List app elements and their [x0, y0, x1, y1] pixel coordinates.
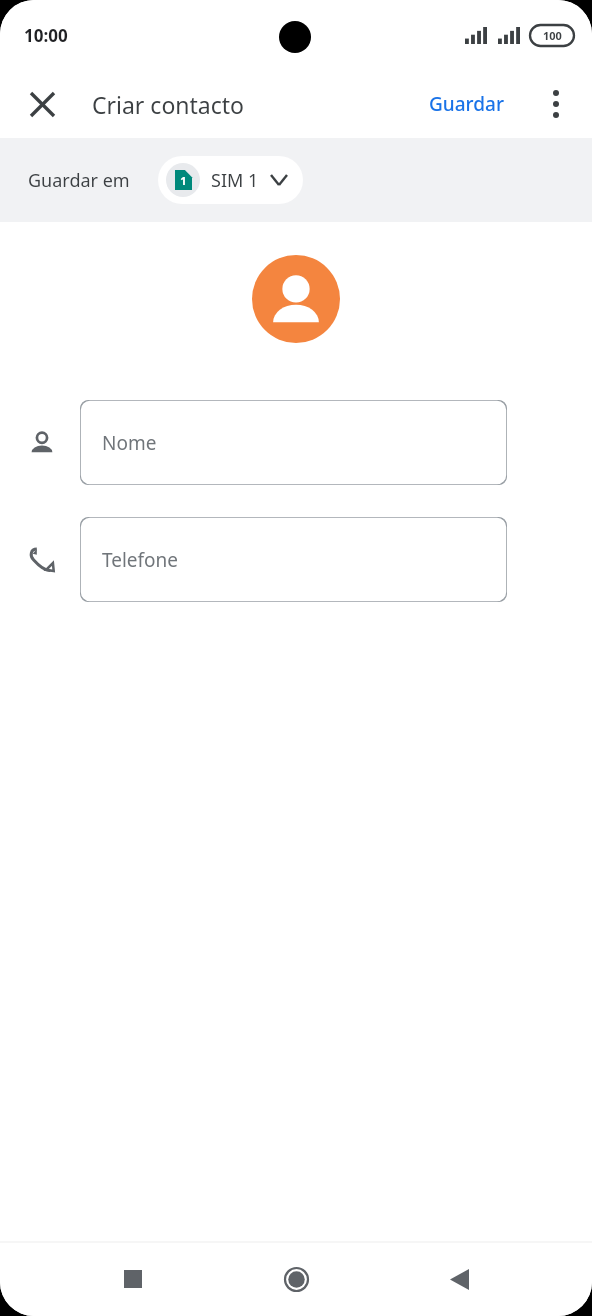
staticText: Nome [102, 430, 157, 456]
button[interactable]: Close [12, 74, 72, 134]
staticText: 10:00 [24, 24, 68, 47]
staticText: Telefone [102, 547, 179, 573]
other: Phone [18, 536, 66, 584]
staticText: Guardar [429, 91, 504, 117]
staticText: Guardar em [28, 168, 130, 193]
staticText: 1 [180, 173, 187, 188]
staticText: 100 [543, 28, 562, 43]
button[interactable]: Add photo [252, 255, 340, 343]
button[interactable]: Telefone [80, 517, 507, 602]
button[interactable]: Guardar [423, 83, 510, 125]
button[interactable]: Home [266, 1249, 326, 1309]
button[interactable]: Nome [80, 400, 507, 485]
staticText: SIM 1 [211, 168, 259, 193]
button[interactable]: Back [429, 1249, 489, 1309]
button[interactable]: Recent apps [103, 1249, 163, 1309]
button[interactable]: 1 [158, 156, 303, 204]
button[interactable]: More options [528, 76, 584, 132]
staticText: Criar contacto [92, 89, 244, 120]
other: Person [18, 419, 66, 467]
